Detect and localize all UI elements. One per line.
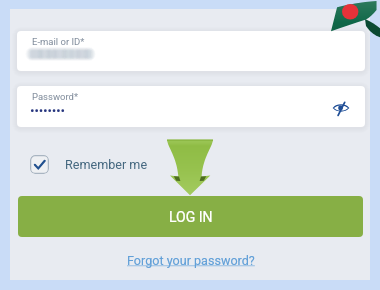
staticText: LOG IN [169,209,213,225]
staticText: Remember me [65,157,148,172]
button[interactable]: LOG IN [18,196,363,237]
staticText: Password* [32,91,79,102]
staticText: Forgot your password? [127,253,255,268]
button[interactable]: Password* [17,86,365,127]
button[interactable]: Remember me [30,152,148,176]
button[interactable]: E-mail or ID* [17,31,365,71]
button[interactable]: Show password [326,93,356,122]
button[interactable]: Forgot your password? [122,250,260,271]
staticText: E-mail or ID* [32,36,85,47]
